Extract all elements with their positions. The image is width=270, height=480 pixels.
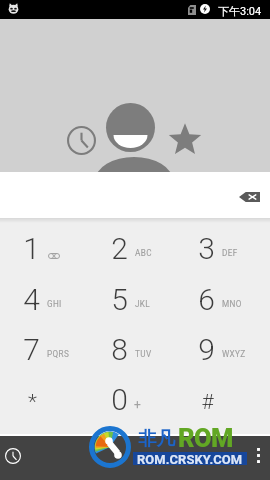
- button[interactable]: Backspace: [239, 192, 260, 202]
- button[interactable]: 6: [175, 274, 263, 324]
- button[interactable]: 9: [175, 324, 263, 374]
- staticText: *: [28, 390, 37, 415]
- staticText: 8: [111, 332, 128, 367]
- staticText: ABC: [135, 248, 152, 258]
- staticText: 非凡: [138, 427, 175, 450]
- staticText: PQRS: [47, 349, 70, 359]
- button[interactable]: 0: [88, 374, 176, 424]
- staticText: 4: [23, 282, 40, 317]
- button[interactable]: Recents: [67, 126, 96, 155]
- button[interactable]: 2: [88, 223, 176, 273]
- staticText: 7: [23, 332, 40, 367]
- button[interactable]: More options: [256, 448, 261, 463]
- staticText: GHI: [47, 299, 62, 309]
- button[interactable]: Favorites: [168, 122, 202, 156]
- staticText: WXYZ: [222, 349, 246, 359]
- button[interactable]: Contacts: [96, 102, 172, 172]
- staticText: TUV: [135, 349, 152, 359]
- button[interactable]: #: [175, 374, 263, 424]
- staticText: 3: [198, 231, 215, 266]
- staticText: ROM.CRSKY.COM: [137, 452, 243, 465]
- button[interactable]: Call history: [5, 448, 21, 464]
- staticText: DEF: [222, 248, 238, 258]
- staticText: 6: [198, 282, 215, 317]
- staticText: MNO: [222, 299, 242, 309]
- button[interactable]: 5: [88, 274, 176, 324]
- staticText: 2: [111, 231, 128, 266]
- staticText: 下午3:04: [218, 4, 262, 18]
- button[interactable]: 8: [88, 324, 176, 374]
- staticText: 0: [111, 382, 128, 417]
- button[interactable]: 7: [0, 324, 88, 374]
- button[interactable]: 3: [175, 223, 263, 273]
- button[interactable]: 1: [0, 223, 88, 273]
- staticText: 5: [111, 282, 128, 317]
- staticText: JKL: [135, 299, 151, 309]
- staticText: 1: [23, 231, 40, 266]
- button[interactable]: 4: [0, 274, 88, 324]
- staticText: ROM: [178, 423, 233, 453]
- staticText: +: [134, 398, 141, 412]
- staticText: 9: [198, 332, 215, 367]
- button[interactable]: *: [0, 374, 88, 424]
- staticText: #: [201, 390, 214, 415]
